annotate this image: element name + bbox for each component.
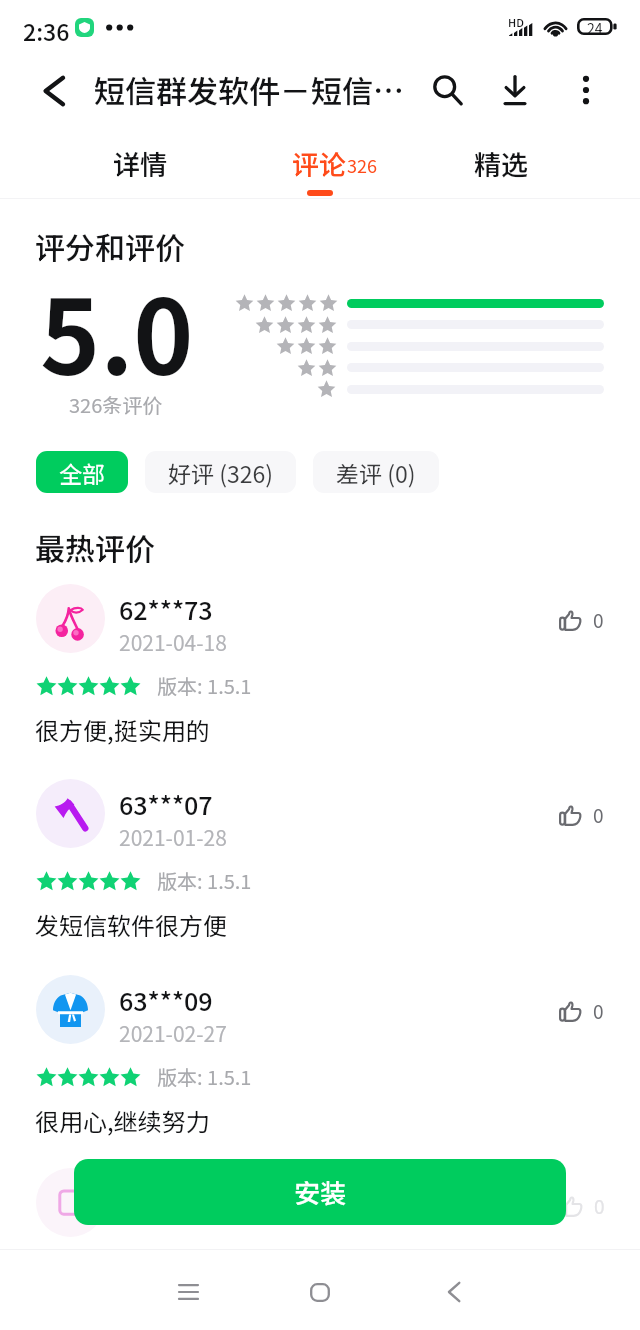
staticText: 0: [593, 997, 604, 1025]
staticText: 0: [593, 606, 604, 634]
button[interactable]: 安装: [74, 1159, 566, 1225]
staticText: 好评 (326): [168, 456, 273, 489]
button[interactable]: More options: [562, 66, 610, 114]
button[interactable]: Search: [424, 66, 472, 114]
button[interactable]: 差评 (0): [313, 451, 439, 493]
staticText: 版本: 1.5.1: [157, 866, 252, 895]
staticText: 差评 (0): [336, 456, 416, 489]
button[interactable]: Recents: [163, 1267, 213, 1317]
staticText: 版本: 1.5.1: [157, 1062, 252, 1091]
button[interactable]: 详情: [70, 144, 210, 194]
staticText: 发短信软件很方便: [35, 907, 227, 942]
button[interactable]: 好评 (326): [145, 451, 296, 493]
staticText: 24: [587, 18, 603, 35]
staticText: 评分和评价: [35, 224, 185, 267]
staticText: 63***07: [119, 786, 213, 822]
staticText: 326: [347, 152, 377, 178]
button[interactable]: Back: [30, 71, 78, 111]
staticText: 很用心,继续努力: [35, 1103, 210, 1138]
staticText: 精选: [474, 144, 528, 183]
staticText: 0: [594, 1192, 605, 1220]
staticText: 62***73: [119, 591, 213, 627]
button[interactable]: Home: [295, 1267, 345, 1317]
button[interactable]: 评论: [249, 144, 389, 194]
button[interactable]: Back: [429, 1267, 479, 1317]
staticText: 326条评价: [69, 390, 163, 419]
staticText: 评论: [292, 144, 346, 183]
staticText: 2:36: [23, 14, 70, 47]
staticText: 安装: [294, 1173, 347, 1211]
staticText: 最热评价: [35, 525, 155, 568]
staticText: 5.0: [40, 257, 194, 405]
staticText: 0: [593, 801, 604, 829]
staticText: 2021-04-18: [119, 627, 227, 657]
staticText: 很方便,挺实用的: [35, 712, 210, 747]
button[interactable]: 全部: [36, 451, 128, 493]
staticText: 短信群发软件－短信…: [94, 67, 404, 112]
staticText: 2021-01-28: [119, 822, 227, 852]
staticText: 版本: 1.5.1: [157, 671, 252, 700]
staticText: 详情: [113, 144, 167, 183]
staticText: 63***09: [119, 982, 213, 1018]
button[interactable]: Like: [559, 997, 604, 1025]
staticText: 全部: [59, 456, 105, 489]
button[interactable]: Like: [559, 606, 604, 634]
button[interactable]: 精选: [431, 144, 571, 194]
staticText: 2021-02-27: [119, 1018, 227, 1048]
button[interactable]: Like: [559, 801, 604, 829]
staticText: HD: [508, 14, 524, 30]
button[interactable]: Download: [491, 66, 539, 114]
